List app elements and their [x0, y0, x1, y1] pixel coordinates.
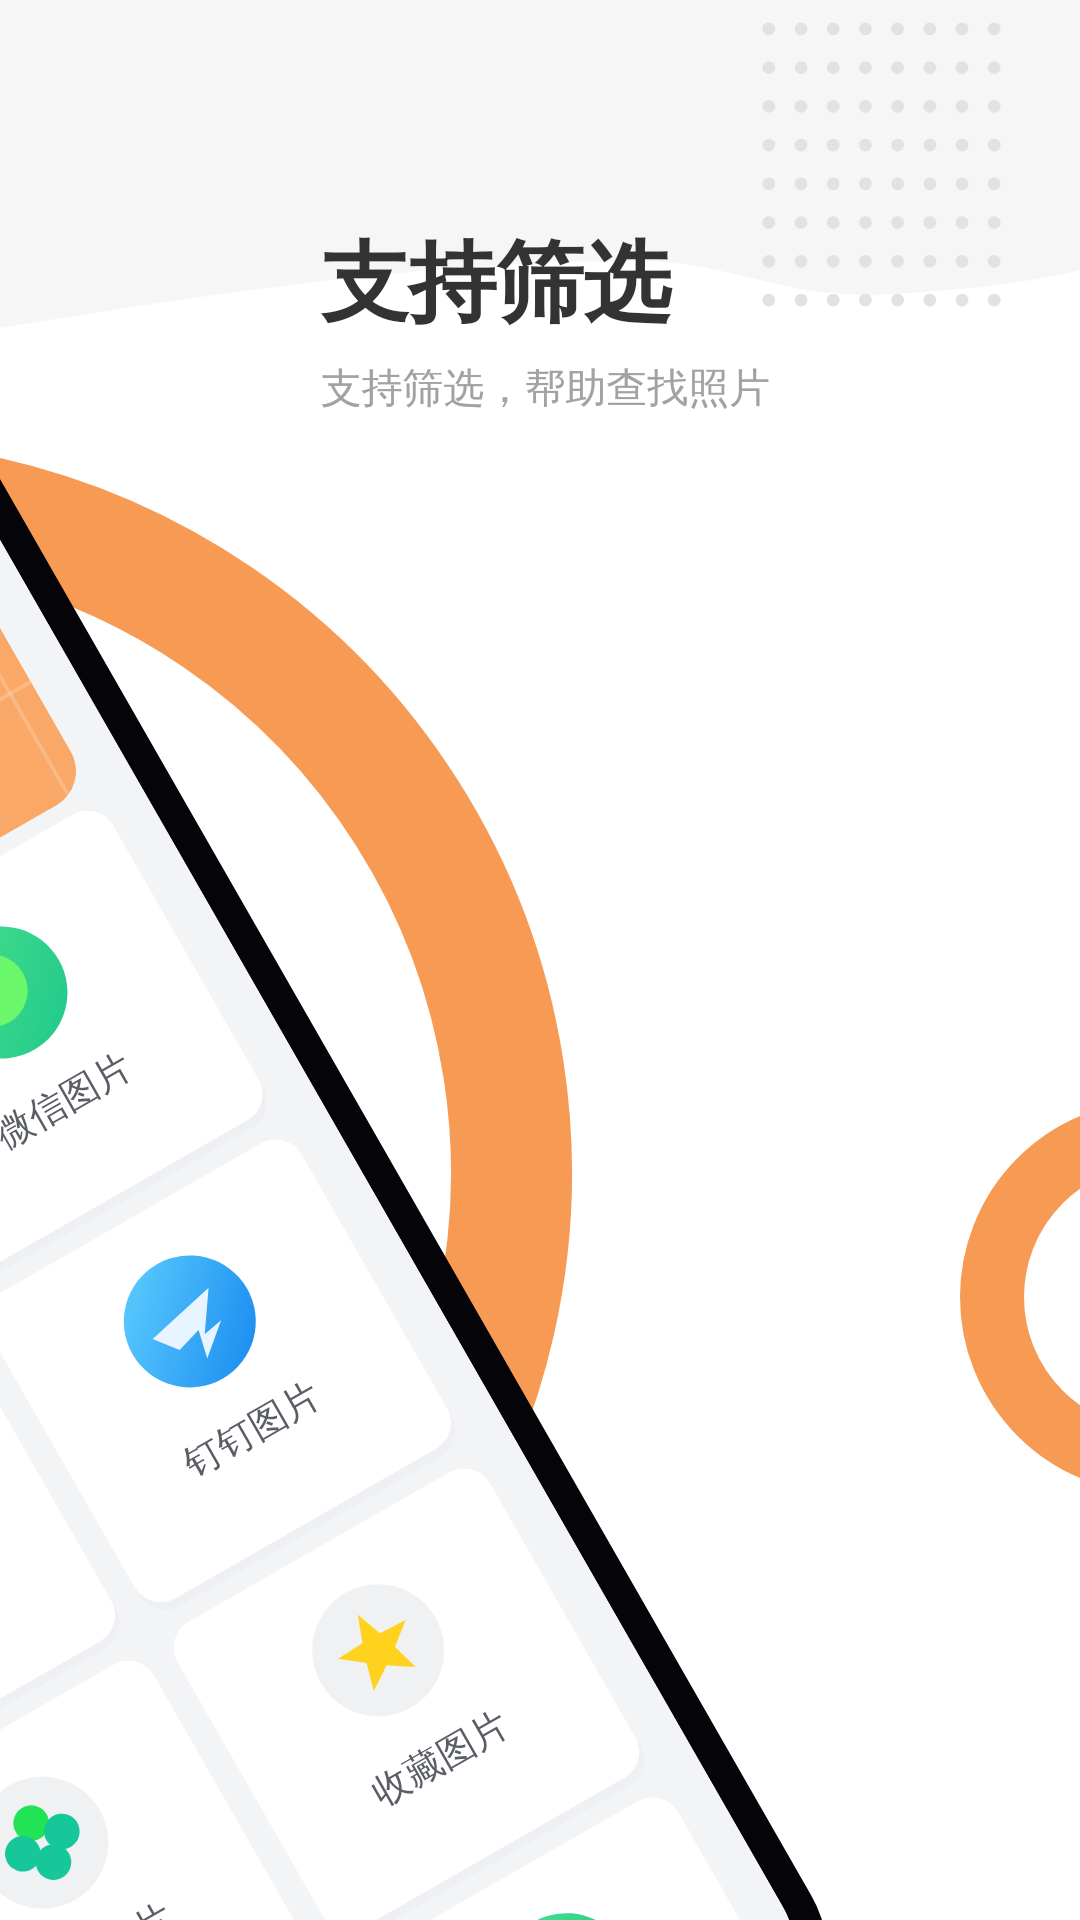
button[interactable] [0, 0, 1080, 1920]
